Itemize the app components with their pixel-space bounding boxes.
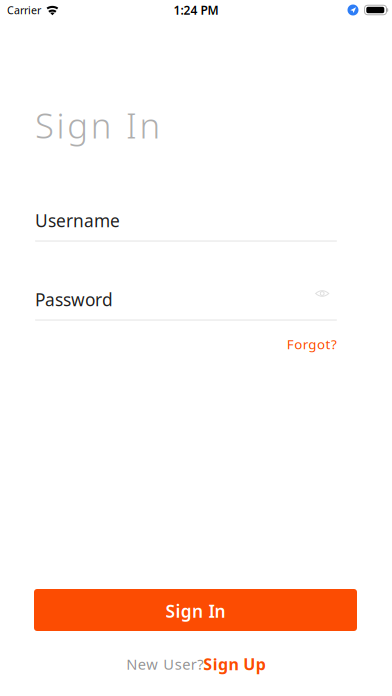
staticText: Carrier <box>7 3 41 17</box>
staticText: 1:24 PM <box>173 2 218 18</box>
staticText: Sign In <box>165 599 226 622</box>
staticText: New User? <box>126 654 203 674</box>
staticText: Password <box>35 288 113 311</box>
staticText: Sign Up <box>203 653 266 675</box>
button[interactable]: Show password <box>315 291 337 307</box>
staticText: Sign In <box>35 102 161 148</box>
button[interactable]: Sign In <box>34 589 357 631</box>
button[interactable]: Sign Up <box>203 653 266 675</box>
staticText: Forgot? <box>287 335 337 353</box>
button[interactable]: Forgot? <box>35 336 337 352</box>
staticText: Username <box>35 209 120 232</box>
